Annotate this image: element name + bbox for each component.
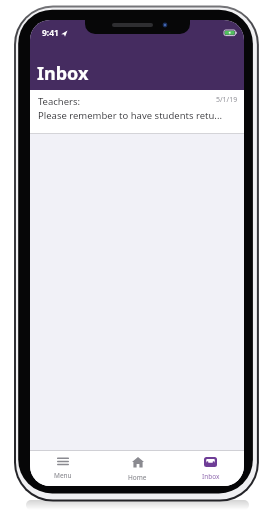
button[interactable]: Home: [102, 451, 173, 486]
staticText: Please remember to have students retu...: [38, 109, 222, 122]
staticText: Inbox: [37, 61, 89, 86]
button[interactable]: Teachers:: [30, 90, 244, 134]
button[interactable]: Inbox: [175, 451, 244, 486]
staticText: Home: [128, 473, 147, 482]
staticText: 9:41: [42, 27, 59, 39]
staticText: Menu: [54, 471, 72, 480]
staticText: 5/1/19: [216, 95, 238, 105]
staticText: Teachers:: [38, 95, 81, 108]
button[interactable]: Menu: [30, 451, 99, 486]
staticText: Inbox: [202, 472, 220, 481]
